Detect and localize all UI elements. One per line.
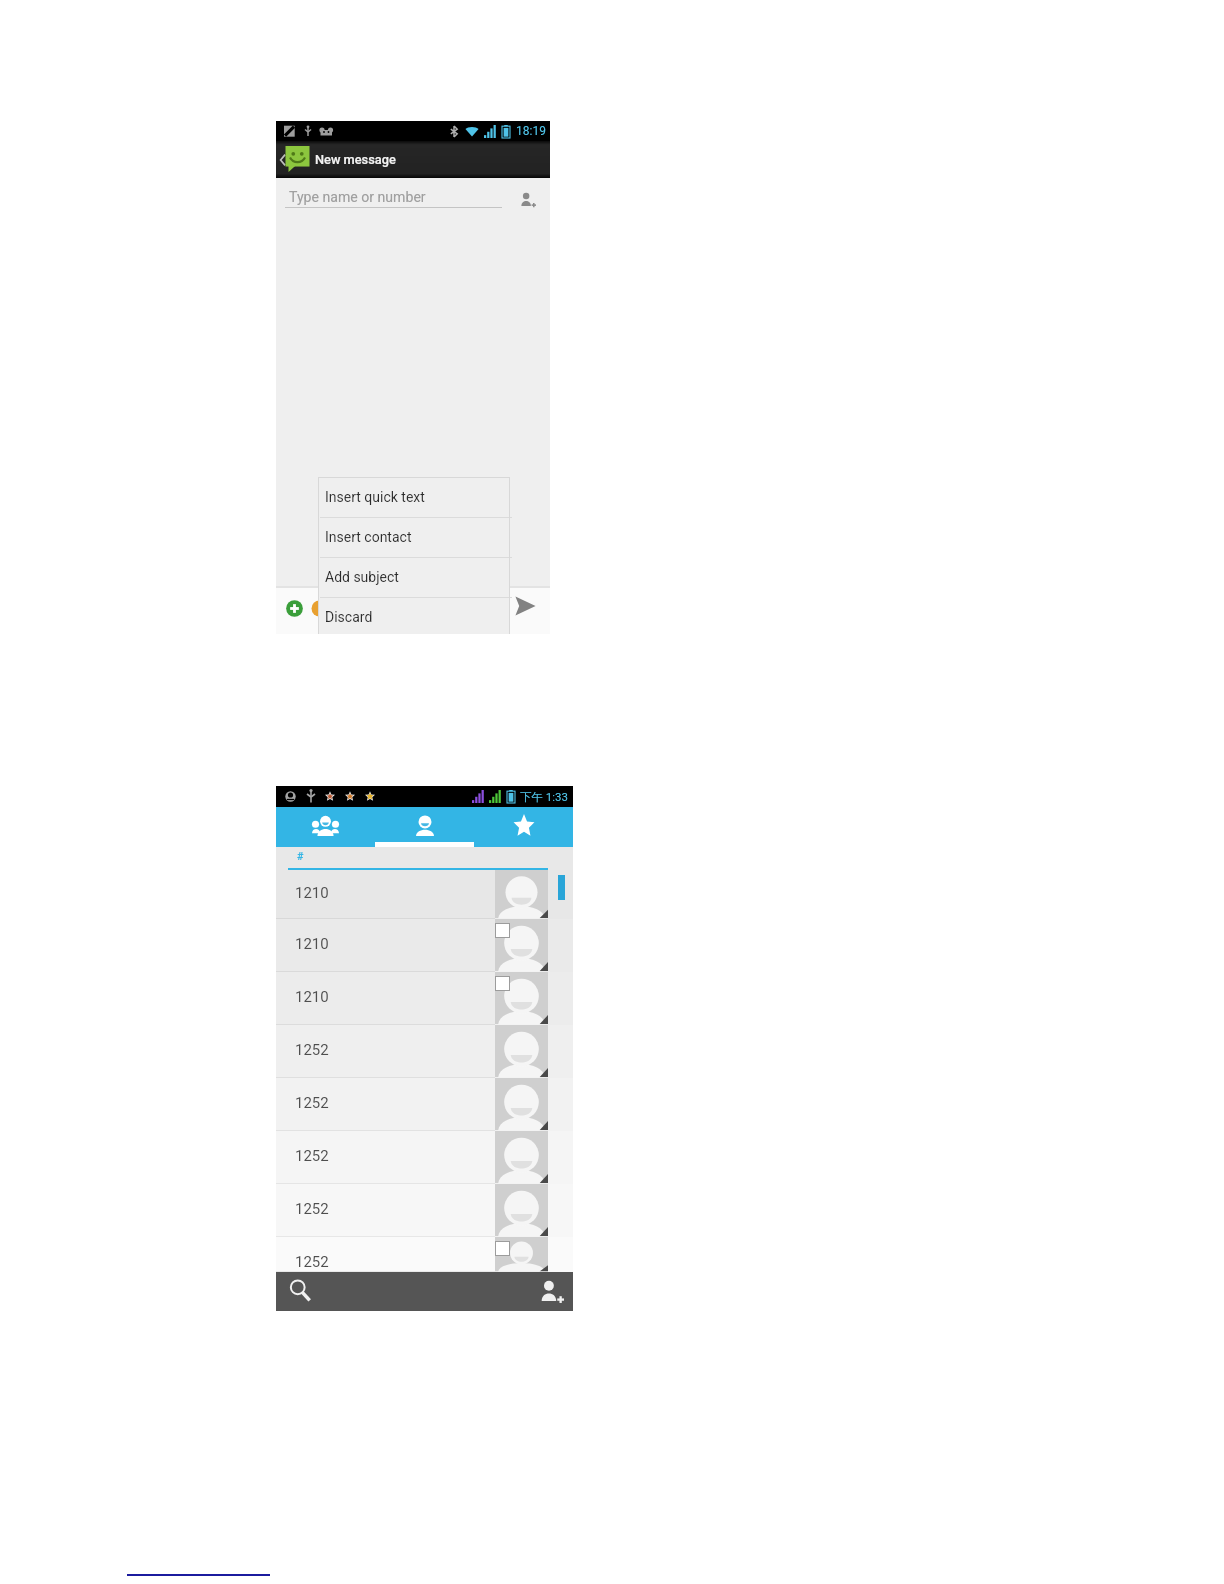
staticText: Insert quick text bbox=[325, 489, 425, 505]
staticText: # bbox=[297, 850, 304, 863]
button[interactable]: Search bbox=[289, 1279, 312, 1302]
staticText: 18:19 bbox=[516, 124, 546, 138]
button[interactable]: Back bbox=[277, 141, 317, 178]
button[interactable]: Add contact bbox=[538, 1278, 564, 1304]
button[interactable]: 1210 bbox=[276, 972, 573, 1025]
staticText: 1210 bbox=[295, 935, 329, 953]
staticText: Discard bbox=[325, 609, 373, 625]
button[interactable]: Favourites bbox=[474, 807, 573, 847]
button[interactable]: Attach bbox=[285, 599, 304, 618]
button[interactable]: 1252 bbox=[276, 1237, 573, 1272]
button[interactable]: Contacts bbox=[375, 807, 474, 847]
button[interactable]: Insert quick text bbox=[318, 477, 510, 517]
button[interactable]: Groups bbox=[276, 807, 375, 847]
staticText: Add subject bbox=[325, 569, 399, 585]
button[interactable]: 1252 bbox=[276, 1078, 573, 1131]
staticText: 1252 bbox=[295, 1147, 329, 1165]
staticText: Type name or number bbox=[289, 189, 426, 206]
button[interactable]: Add contact bbox=[519, 191, 536, 208]
staticText: 1252 bbox=[295, 1253, 329, 1271]
staticText: Insert contact bbox=[325, 529, 412, 545]
button[interactable]: 1210 bbox=[276, 870, 573, 919]
button[interactable]: 1210 bbox=[276, 919, 573, 972]
staticText: 1210 bbox=[295, 988, 329, 1006]
button[interactable]: Emoji bbox=[310, 599, 329, 618]
staticText: 1252 bbox=[295, 1200, 329, 1218]
button[interactable]: 1252 bbox=[276, 1184, 573, 1237]
staticText: 1210 bbox=[295, 884, 329, 902]
button[interactable]: 1252 bbox=[276, 1025, 573, 1078]
button[interactable]: Discard bbox=[318, 597, 510, 634]
button[interactable]: 1252 bbox=[276, 1131, 573, 1184]
button[interactable]: Insert contact bbox=[318, 517, 510, 557]
staticText: 下午 1:33 bbox=[520, 790, 569, 804]
button[interactable]: Add subject bbox=[318, 557, 510, 597]
staticText: 1252 bbox=[295, 1041, 329, 1059]
staticText: New message bbox=[315, 152, 396, 167]
staticText: 1252 bbox=[295, 1094, 329, 1112]
button[interactable]: Send bbox=[515, 596, 536, 616]
